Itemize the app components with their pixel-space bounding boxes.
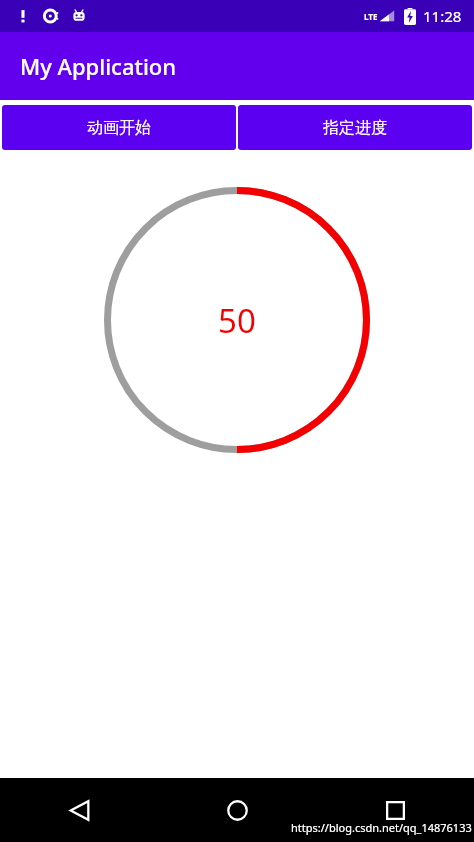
button[interactable]: 指定进度 [238,105,472,150]
staticText: 11:28 [423,6,462,26]
staticText: 指定进度 [323,118,387,138]
button[interactable]: Back [0,778,158,842]
staticText: LTE [364,11,378,22]
button[interactable]: Recent apps [316,778,474,842]
button[interactable]: 动画开始 [2,105,236,150]
staticText: 动画开始 [87,118,151,138]
staticText: My Application [20,51,177,81]
button[interactable]: Home [158,778,316,842]
staticText: https://blog.csdn.net/qq_14876133 [291,820,472,835]
staticText: 50 [218,298,256,343]
